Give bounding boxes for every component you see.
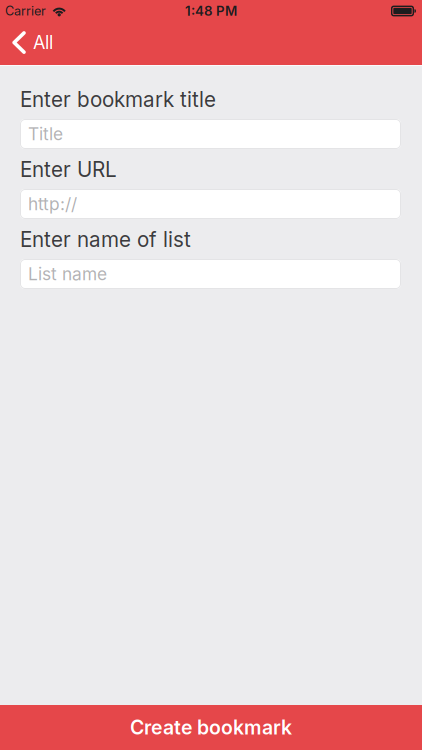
staticText: Enter name of list bbox=[20, 227, 191, 252]
button[interactable]: List name bbox=[20, 259, 401, 289]
staticText: Create bookmark bbox=[130, 716, 292, 739]
staticText: List name bbox=[28, 263, 107, 284]
staticText: Enter URL bbox=[20, 157, 117, 182]
staticText: Enter bookmark title bbox=[20, 87, 216, 112]
staticText: Title bbox=[28, 123, 63, 144]
staticText: All bbox=[33, 32, 53, 53]
button[interactable]: http:// bbox=[20, 189, 401, 219]
staticText: Carrier bbox=[5, 3, 46, 19]
button[interactable]: Create bookmark bbox=[0, 705, 422, 750]
staticText: http:// bbox=[28, 193, 77, 214]
button[interactable]: Back to All bbox=[0, 21, 65, 64]
button[interactable]: Title bbox=[20, 119, 401, 149]
staticText: 1:48 PM bbox=[185, 3, 237, 19]
